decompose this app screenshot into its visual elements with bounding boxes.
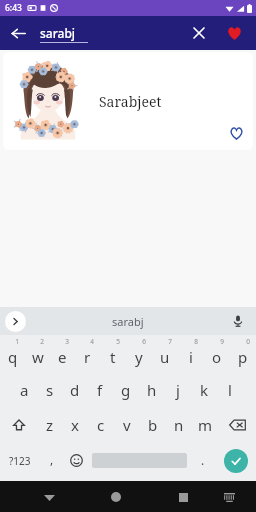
button[interactable]: c — [88, 407, 114, 442]
button[interactable]: Back — [4, 19, 32, 47]
button[interactable]: Voice input — [228, 311, 248, 331]
button[interactable]: k — [191, 372, 217, 407]
staticText: a — [20, 380, 29, 400]
button[interactable]: g — [113, 372, 139, 407]
button[interactable]: j — [165, 372, 191, 407]
button[interactable]: h — [139, 372, 165, 407]
button[interactable]: sarabj — [112, 314, 144, 329]
staticText: k — [200, 380, 209, 400]
staticText: x — [71, 415, 79, 435]
staticText: v — [123, 415, 131, 435]
button[interactable]: Switch keyboard — [217, 485, 241, 509]
staticText: q — [8, 347, 18, 367]
staticText: , — [50, 451, 54, 467]
staticText: c — [97, 415, 105, 435]
button[interactable]: 5 — [100, 335, 126, 372]
button[interactable]: Expand suggestions — [5, 311, 26, 332]
staticText: t — [110, 347, 116, 367]
staticText: i — [189, 347, 193, 367]
button[interactable]: 4 — [75, 335, 100, 372]
staticText: 6:43 — [5, 2, 22, 14]
staticText: n — [174, 415, 184, 435]
button[interactable]: Sarabjeet — [3, 52, 253, 150]
staticText: m — [198, 415, 213, 435]
staticText: r — [84, 347, 91, 367]
button[interactable]: 0 — [230, 335, 256, 372]
staticText: 3 — [65, 337, 69, 346]
staticText: 8 — [194, 337, 198, 346]
button[interactable]: x — [62, 407, 88, 442]
button[interactable]: b — [140, 407, 166, 442]
staticText: 0 — [246, 337, 250, 346]
staticText: p — [238, 347, 248, 367]
button[interactable]: z — [37, 407, 62, 442]
staticText: Sarabjeet — [99, 92, 162, 111]
button[interactable]: d — [62, 372, 87, 407]
button[interactable]: f — [87, 372, 113, 407]
button[interactable]: Add to favorites — [225, 122, 247, 144]
staticText: . — [201, 452, 205, 468]
staticText: y — [135, 347, 143, 367]
button[interactable]: sarabj — [40, 25, 140, 43]
button[interactable]: Clear — [186, 20, 212, 46]
staticText: ?123 — [9, 454, 31, 468]
button[interactable]: s — [37, 372, 62, 407]
staticText: 4 — [90, 337, 94, 346]
staticText: h — [147, 380, 157, 400]
button[interactable]: Recent apps — [169, 483, 197, 511]
staticText: u — [160, 347, 170, 367]
button[interactable]: n — [166, 407, 192, 442]
button[interactable]: 1 — [0, 335, 25, 372]
button[interactable]: Backspace — [218, 407, 256, 442]
staticText: o — [212, 347, 222, 367]
staticText: g — [121, 380, 131, 400]
staticText: s — [46, 380, 54, 400]
staticText: b — [148, 415, 158, 435]
button[interactable]: 2 — [25, 335, 50, 372]
staticText: z — [46, 415, 54, 435]
button[interactable]: 7 — [152, 335, 178, 372]
button[interactable]: 9 — [204, 335, 230, 372]
button[interactable]: Emoji — [64, 442, 89, 479]
button[interactable]: v — [114, 407, 140, 442]
button[interactable]: , — [39, 442, 64, 479]
staticText: d — [70, 380, 80, 400]
staticText: f — [97, 380, 103, 400]
button[interactable]: Search — [224, 449, 248, 473]
button[interactable]: Home — [102, 483, 130, 511]
button[interactable]: m — [192, 407, 218, 442]
staticText: j — [176, 380, 180, 400]
staticText: 6 — [142, 337, 146, 346]
button[interactable]: Favorites — [220, 19, 248, 47]
staticText: 7 — [168, 337, 172, 346]
staticText: 9 — [220, 337, 224, 346]
staticText: sarabj — [40, 25, 76, 41]
staticText: 2 — [40, 337, 44, 346]
button[interactable]: 3 — [50, 335, 75, 372]
button[interactable]: ?123 — [0, 442, 39, 479]
button[interactable]: l — [217, 372, 243, 407]
button[interactable]: Shift — [0, 407, 37, 442]
staticText: w — [32, 347, 44, 367]
staticText: 5 — [116, 337, 120, 346]
button[interactable]: a — [12, 372, 37, 407]
staticText: 1 — [15, 337, 19, 346]
button[interactable]: . — [190, 442, 215, 479]
staticText: e — [58, 347, 67, 367]
button[interactable]: 8 — [178, 335, 204, 372]
staticText: l — [228, 380, 232, 400]
button[interactable]: Back — [35, 483, 63, 511]
button[interactable]: 6 — [126, 335, 152, 372]
